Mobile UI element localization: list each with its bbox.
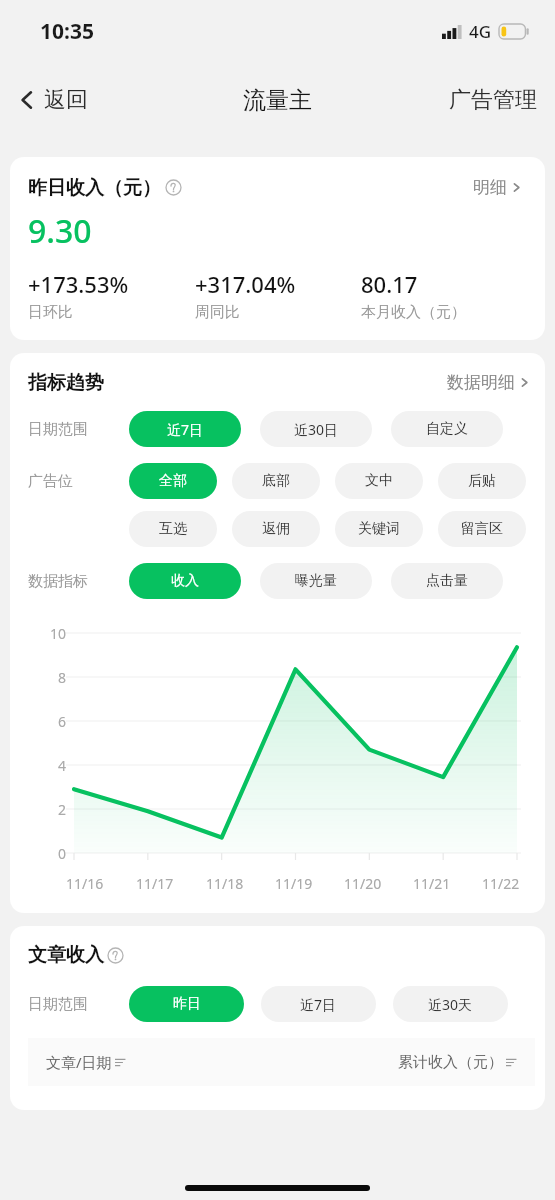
staticText: 日环比 xyxy=(28,303,73,322)
button[interactable]: 累计收入（元） xyxy=(398,1053,517,1072)
staticText: 近7日 xyxy=(167,420,204,439)
staticText: 指标趋势 xyxy=(28,371,104,395)
staticText: 全部 xyxy=(159,472,187,490)
staticText: 明细 xyxy=(473,177,507,198)
staticText: 文章收入 xyxy=(28,943,104,967)
staticText: 10:35 xyxy=(40,17,94,46)
staticText: 文中 xyxy=(365,472,393,490)
button[interactable]: 留言区 xyxy=(438,511,526,547)
button[interactable]: 近30天 xyxy=(393,986,508,1022)
staticText: 返回 xyxy=(44,86,88,114)
staticText: 流量主 xyxy=(243,86,312,115)
staticText: 11/18 xyxy=(206,874,244,893)
staticText: 4 xyxy=(36,756,66,775)
staticText: 后贴 xyxy=(468,472,496,490)
staticText: 近30天 xyxy=(428,995,473,1014)
button[interactable]: 关键词 xyxy=(335,511,423,547)
staticText: 数据指标 xyxy=(28,572,129,591)
staticText: 累计收入（元） xyxy=(398,1053,503,1072)
button[interactable]: 昨日 xyxy=(129,986,244,1022)
button[interactable]: 数据明细 xyxy=(443,370,535,395)
button[interactable]: 底部 xyxy=(232,463,320,499)
staticText: 点击量 xyxy=(426,572,468,590)
button[interactable]: 点击量 xyxy=(391,563,503,599)
staticText: +317.04% xyxy=(195,269,296,299)
staticText: 昨日收入（元） xyxy=(28,176,161,200)
button[interactable]: 后贴 xyxy=(438,463,526,499)
staticText: 80.17 xyxy=(361,269,418,299)
staticText: 收入 xyxy=(171,572,199,590)
staticText: 近30日 xyxy=(294,420,339,439)
staticText: 11/19 xyxy=(275,874,313,893)
button[interactable]: 返回 xyxy=(8,80,96,120)
staticText: 文章/日期 xyxy=(46,1052,112,1072)
staticText: 留言区 xyxy=(461,520,503,538)
staticText: 9.30 xyxy=(28,209,92,253)
button[interactable]: 近30日 xyxy=(260,411,372,447)
staticText: 8 xyxy=(36,668,66,687)
staticText: 11/17 xyxy=(136,874,174,893)
button[interactable]: 收入 xyxy=(129,563,241,599)
button[interactable]: 近7日 xyxy=(129,411,241,447)
staticText: 底部 xyxy=(262,472,290,490)
staticText: 6 xyxy=(36,712,66,731)
staticText: 日期范围 xyxy=(28,420,129,439)
staticText: 11/20 xyxy=(344,874,382,893)
staticText: 4G xyxy=(469,20,492,43)
button[interactable]: 近7日 xyxy=(261,986,376,1022)
staticText: 11/21 xyxy=(413,874,451,893)
button[interactable]: 文章/日期 xyxy=(46,1052,126,1072)
button[interactable]: 明细 xyxy=(469,175,527,200)
staticText: 昨日 xyxy=(173,995,201,1013)
staticText: 周同比 xyxy=(195,303,240,322)
staticText: 曝光量 xyxy=(295,572,337,590)
button[interactable]: 互选 xyxy=(129,511,217,547)
button[interactable]: 广告管理 xyxy=(441,80,545,120)
staticText: 2 xyxy=(36,800,66,819)
button[interactable]: 文中 xyxy=(335,463,423,499)
staticText: 11/16 xyxy=(66,874,104,893)
staticText: 本月收入（元） xyxy=(361,303,466,322)
staticText: 互选 xyxy=(159,520,187,538)
staticText: 近7日 xyxy=(300,995,337,1014)
button[interactable]: 返佣 xyxy=(232,511,320,547)
staticText: 广告位 xyxy=(28,472,129,491)
staticText: 自定义 xyxy=(426,420,468,438)
staticText: 返佣 xyxy=(262,520,290,538)
button[interactable]: 曝光量 xyxy=(260,563,372,599)
staticText: 0 xyxy=(36,844,66,863)
button[interactable]: 自定义 xyxy=(391,411,503,447)
staticText: 10 xyxy=(36,624,66,643)
staticText: 日期范围 xyxy=(28,995,129,1014)
staticText: 11/22 xyxy=(482,874,520,893)
staticText: 关键词 xyxy=(358,520,400,538)
staticText: 广告管理 xyxy=(449,86,537,114)
staticText: 数据明细 xyxy=(447,372,515,393)
button[interactable]: 全部 xyxy=(129,463,217,499)
staticText: +173.53% xyxy=(28,269,129,299)
